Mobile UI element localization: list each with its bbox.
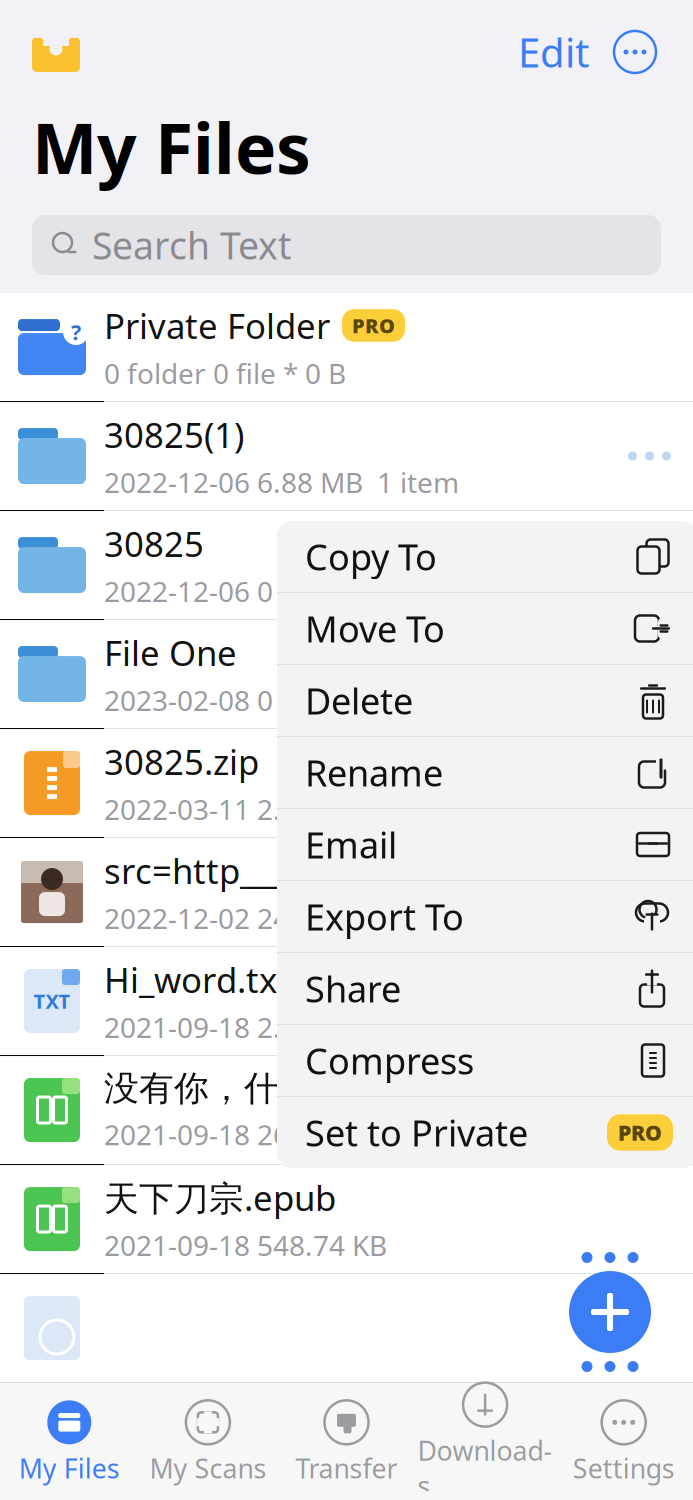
button[interactable]: Add bbox=[569, 1271, 651, 1353]
staticText: PRO bbox=[618, 1118, 662, 1147]
button[interactable]: Compress bbox=[277, 1025, 693, 1096]
staticText: Transfer bbox=[295, 1450, 397, 1486]
staticText: 2022-03-11 2.87 MB bbox=[104, 790, 363, 828]
button[interactable]: src=http___nimg bbox=[0, 838, 693, 946]
button[interactable]: Settings bbox=[554, 1388, 693, 1486]
staticText: Rename bbox=[305, 749, 443, 796]
staticText: PRO bbox=[352, 312, 395, 339]
button[interactable]: 30825 bbox=[0, 511, 693, 619]
staticText: Email bbox=[305, 821, 397, 868]
button[interactable]: Edit bbox=[518, 25, 589, 78]
button[interactable]: Downloads bbox=[416, 1371, 554, 1500]
button[interactable]: ? bbox=[0, 293, 693, 401]
staticText: TXT bbox=[33, 988, 70, 1014]
button[interactable]: Export To bbox=[277, 881, 693, 952]
button[interactable]: My Scans bbox=[139, 1388, 277, 1486]
staticText: ? bbox=[71, 318, 81, 346]
staticText: 2021-09-18 269.7 KB bbox=[104, 1116, 371, 1153]
staticText: Edit bbox=[518, 25, 589, 78]
button[interactable]: More options bbox=[589, 26, 693, 78]
staticText: Copy To bbox=[305, 533, 437, 580]
button[interactable]: Search Text bbox=[0, 193, 693, 293]
button[interactable]: Email bbox=[277, 809, 693, 880]
staticText: 没有你，什么都 bbox=[104, 1067, 349, 1110]
button[interactable]: Share bbox=[277, 953, 693, 1024]
staticText: Private Folder bbox=[104, 302, 330, 348]
staticText: 30825(1) bbox=[104, 411, 244, 457]
staticText: 2022-12-06 6.88 MB 1 item bbox=[104, 463, 459, 501]
button[interactable]: 没有你，什么都 bbox=[0, 1056, 693, 1164]
staticText: 2022-12-02 24.48 KB bbox=[104, 899, 371, 937]
button[interactable] bbox=[0, 1274, 693, 1382]
staticText: Set to Private bbox=[305, 1109, 528, 1156]
staticText: Search Text bbox=[92, 220, 291, 270]
staticText: Compress bbox=[305, 1037, 474, 1084]
button[interactable]: Delete bbox=[277, 665, 693, 736]
staticText: File One bbox=[104, 629, 237, 675]
staticText: 2021-09-18 548.74 KB bbox=[104, 1226, 387, 1264]
staticText: 30825.zip bbox=[104, 738, 259, 784]
staticText: 0 folder 0 file * 0 B bbox=[104, 354, 346, 392]
staticText: 2022-12-06 0 B 0 item bbox=[104, 572, 394, 610]
button[interactable]: 30825.zip bbox=[0, 729, 693, 837]
staticText: 2021-09-18 2.62 KB bbox=[104, 1008, 355, 1046]
button[interactable]: 30825(1) bbox=[0, 402, 693, 510]
staticText: 天下刀宗.epub bbox=[104, 1174, 336, 1220]
staticText: Settings bbox=[573, 1450, 675, 1486]
staticText: My Files bbox=[32, 101, 311, 193]
button[interactable]: Transfer bbox=[277, 1388, 416, 1486]
staticText: Downloads bbox=[418, 1433, 553, 1500]
button[interactable]: Copy To bbox=[277, 521, 693, 592]
button[interactable]: File One bbox=[0, 620, 693, 728]
staticText: My Scans bbox=[149, 1450, 266, 1486]
staticText: Hi_word.txt bbox=[104, 956, 290, 1002]
staticText: Share bbox=[305, 965, 401, 1012]
button[interactable]: TXT bbox=[0, 947, 693, 1055]
staticText: Export To bbox=[305, 893, 464, 940]
staticText: Delete bbox=[305, 677, 413, 724]
button[interactable]: Set to Private bbox=[277, 1097, 693, 1168]
button[interactable]: Rename bbox=[277, 737, 693, 808]
button[interactable]: Move To bbox=[277, 593, 693, 664]
button[interactable]: My Files bbox=[0, 1388, 139, 1486]
button[interactable]: Premium bbox=[0, 30, 82, 74]
staticText: src=http___nimg bbox=[104, 847, 368, 893]
staticText: 2023-02-08 0 B 0 item bbox=[104, 681, 394, 719]
staticText: Move To bbox=[305, 605, 445, 652]
staticText: My Files bbox=[19, 1450, 120, 1486]
button[interactable]: 天下刀宗.epub bbox=[0, 1165, 693, 1273]
staticText: 30825 bbox=[104, 520, 204, 566]
